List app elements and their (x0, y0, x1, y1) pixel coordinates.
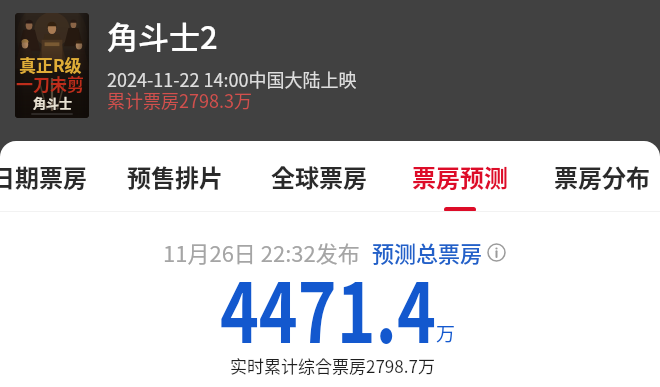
other: Info (487, 243, 506, 262)
staticText: 预售排片 (127, 159, 223, 194)
button[interactable]: 票房分布 (542, 141, 660, 212)
staticText: 一刀未剪 (16, 71, 84, 96)
staticText: 累计票房2798.3万 (107, 87, 252, 113)
staticText: 预测总票房 (372, 236, 483, 268)
staticText: 2024-11-22 14:00中国大陆上映 (107, 66, 357, 92)
staticText: 实时累计综合票房2798.7万 (230, 353, 435, 378)
staticText: 角斗士 (33, 93, 73, 112)
button[interactable]: 票房预测 (400, 141, 520, 212)
button[interactable]: 全球票房 (259, 141, 379, 212)
staticText: 票房分布 (554, 159, 650, 194)
staticText: 11月26日 22:32发布 (163, 236, 360, 268)
staticText: 日期票房 (0, 159, 87, 194)
button[interactable]: 日期票房 (0, 141, 99, 212)
button[interactable]: 电影海报 (15, 13, 89, 118)
staticText: 全球票房 (271, 159, 367, 194)
button[interactable]: 预售排片 (115, 141, 235, 212)
staticText: 真正R级 (19, 52, 82, 77)
staticText: 票房预测 (412, 159, 508, 194)
button[interactable]: 预测总票房 (372, 236, 506, 268)
staticText: 角斗士2 (107, 13, 218, 58)
staticText: 4471.4 (220, 247, 436, 367)
staticText: 万 (436, 319, 456, 347)
